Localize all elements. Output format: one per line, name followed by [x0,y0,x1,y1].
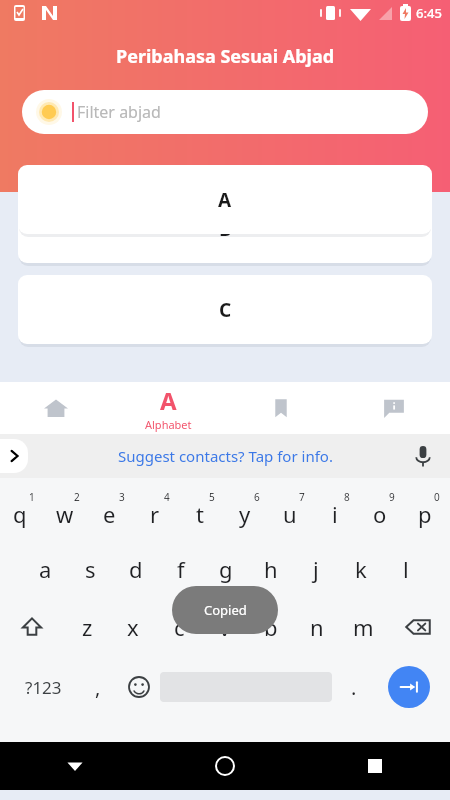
button[interactable]: Backspace [386,598,450,656]
staticText: ?123 [25,676,62,699]
staticText: 4 [164,490,170,504]
staticText: Peribahasa Sesuai Abjad [0,44,450,69]
staticText: A [160,384,177,417]
staticText: h [264,554,278,584]
staticText: q [13,499,27,529]
button[interactable]: y [225,482,270,540]
button[interactable]: a [22,540,68,598]
staticText: m [353,612,374,642]
staticText: 3 [119,490,125,504]
staticText: 9 [389,490,395,504]
button[interactable]: B [18,194,432,263]
button[interactable]: Bookmarks [224,382,337,434]
button[interactable]: x [110,598,156,656]
button[interactable]: i [315,482,360,540]
button[interactable]: k [338,540,383,598]
button[interactable]: v [202,598,248,656]
button[interactable]: A [112,382,224,434]
staticText: k [355,554,367,584]
button[interactable]: c [156,598,202,656]
button[interactable]: Suggest contacts? Tap for info. [118,446,333,466]
button[interactable]: s [68,540,113,598]
button[interactable]: t [180,482,225,540]
button[interactable]: Back [0,742,150,790]
button[interactable]: g [203,540,248,598]
button[interactable]: , [79,656,117,718]
button[interactable]: z [64,598,110,656]
staticText: c [174,612,185,642]
staticText: d [129,554,143,584]
button[interactable]: d [113,540,158,598]
button[interactable]: Shift [0,598,64,656]
staticText: s [85,554,96,584]
staticText: l [403,554,409,584]
staticText: 5 [209,490,215,504]
button[interactable]: C [18,275,432,344]
staticText: 8 [344,490,350,504]
staticText: z [82,612,93,642]
staticText: Copied [204,601,247,619]
staticText: p [418,499,432,529]
staticText: g [219,554,233,584]
button[interactable]: w [45,482,90,540]
staticText: w [56,499,74,529]
staticText: o [373,499,387,529]
staticText: n [310,612,324,642]
staticText: y [239,499,251,529]
staticText: x [127,612,139,642]
button[interactable]: Emoji [117,656,160,718]
staticText: C [219,297,232,323]
staticText: u [283,499,297,529]
staticText: t [196,499,204,529]
button[interactable]: m [340,598,386,656]
button[interactable]: Filter abjad [22,90,428,134]
staticText: a [39,554,52,584]
button[interactable]: More suggestions [0,439,28,473]
staticText: 6:45 [416,4,442,22]
button[interactable]: ?123 [8,656,79,718]
button[interactable]: e [90,482,135,540]
button[interactable]: o [360,482,405,540]
button[interactable]: p [405,482,450,540]
button[interactable]: h [248,540,293,598]
button[interactable]: Home [150,742,300,790]
button[interactable]: Enter [388,666,430,708]
staticText: , [95,674,101,701]
button[interactable]: Home [0,382,112,434]
button[interactable]: A [18,165,432,234]
staticText: . [351,674,357,701]
staticText: f [177,554,185,584]
staticText: Filter abjad [77,101,161,123]
button[interactable]: j [293,540,338,598]
staticText: j [313,554,319,584]
other: Home [41,393,71,423]
staticText: r [150,499,160,529]
button[interactable]: r [135,482,180,540]
staticText: v [219,612,231,642]
button[interactable]: f [158,540,203,598]
staticText: 7 [299,490,305,504]
staticText: Alphabet [145,417,192,432]
staticText: A [218,187,232,213]
staticText: 6 [254,490,260,504]
staticText: 2 [74,490,80,504]
button[interactable]: n [294,598,340,656]
button[interactable]: Voice input [410,443,436,469]
button[interactable]: u [270,482,315,540]
staticText: B [219,216,232,242]
staticText: 1 [29,490,35,504]
button[interactable]: l [383,540,428,598]
staticText: 0 [434,490,440,504]
button[interactable]: Feedback [337,382,450,434]
staticText: i [332,499,338,529]
button[interactable]: Recents [300,742,450,790]
button[interactable]: b [248,598,294,656]
staticText: b [264,612,278,642]
button[interactable]: . [332,656,375,718]
button[interactable]: q [0,482,45,540]
staticText: e [103,499,116,529]
